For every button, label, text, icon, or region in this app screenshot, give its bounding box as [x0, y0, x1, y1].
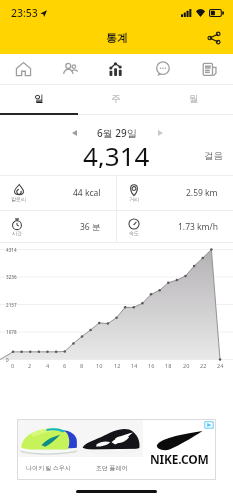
staticText: 통계: [106, 31, 128, 45]
staticText: 칼로리: [11, 196, 26, 202]
staticText: 3236: [6, 274, 17, 280]
staticText: 조던 플레어: [96, 464, 128, 472]
button[interactable]: 일: [0, 85, 77, 113]
button[interactable]: 나이키 릴 스우시: [18, 420, 80, 479]
button[interactable]: Next day: [150, 123, 170, 143]
staticText: 월: [189, 93, 199, 105]
staticText: 6: [63, 362, 67, 370]
staticText: 10: [96, 362, 103, 370]
staticText: 4,314: [83, 138, 150, 168]
staticText: 23:53: [11, 6, 38, 20]
staticText: 16: [148, 362, 155, 370]
staticText: 24: [217, 362, 224, 370]
staticText: 36 분: [80, 221, 101, 233]
button[interactable]: Chat: [139, 54, 186, 84]
staticText: 4: [46, 362, 50, 370]
staticText: 거리: [129, 196, 139, 202]
button[interactable]: 거리: [117, 176, 233, 210]
staticText: 2157: [6, 302, 17, 308]
staticText: 44 kcal: [73, 187, 101, 199]
staticText: 일: [34, 93, 44, 105]
button[interactable]: Friends: [46, 54, 92, 84]
staticText: 0: [6, 357, 9, 363]
staticText: 20: [183, 362, 190, 370]
button[interactable]: 주: [77, 85, 155, 113]
button[interactable]: NIKE.COM: [143, 420, 215, 479]
staticText: 주: [111, 93, 121, 105]
button[interactable]: Share: [203, 27, 225, 49]
button[interactable]: News: [186, 54, 233, 84]
button[interactable]: Statistics: [92, 54, 139, 84]
staticText: 시간: [12, 230, 22, 236]
button[interactable]: 속도: [117, 211, 233, 242]
button[interactable]: 나이키 릴 스우시: [18, 420, 215, 479]
staticText: 4314: [6, 247, 17, 253]
staticText: 12: [114, 362, 121, 370]
button[interactable]: Previous day: [64, 123, 84, 143]
staticText: 22: [200, 362, 207, 370]
staticText: 1078: [6, 329, 17, 335]
staticText: 0: [11, 362, 15, 370]
staticText: 속도: [129, 230, 139, 236]
staticText: 2.59 km: [186, 187, 218, 199]
staticText: 1.73 km/h: [178, 221, 218, 233]
staticText: 걸음: [204, 150, 223, 162]
staticText: 8: [80, 362, 84, 370]
staticText: 18: [165, 362, 172, 370]
button[interactable]: Home: [0, 54, 46, 84]
staticText: 14: [131, 362, 138, 370]
staticText: 2: [28, 362, 32, 370]
button[interactable]: 조던 플레어: [80, 420, 143, 479]
button[interactable]: 칼로리: [0, 176, 116, 210]
staticText: NIKE.COM: [150, 451, 209, 467]
button[interactable]: 월: [155, 85, 233, 113]
staticText: 나이키 릴 스우시: [26, 464, 72, 472]
button[interactable]: 시간: [0, 211, 116, 242]
staticText: 6월 29일: [97, 126, 137, 140]
